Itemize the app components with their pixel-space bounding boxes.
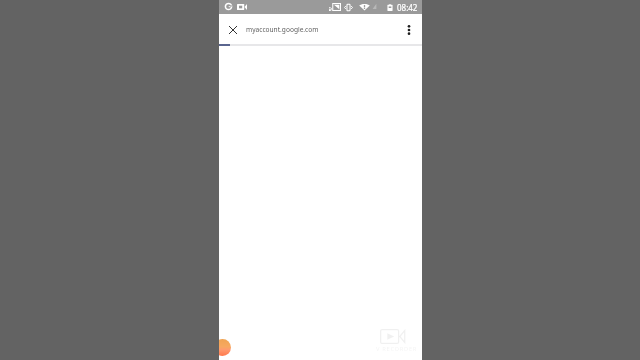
button[interactable]: More options — [397, 15, 421, 45]
button[interactable]: Close — [220, 15, 246, 45]
staticText: 08:42 — [397, 2, 418, 13]
button[interactable]: Record — [219, 339, 231, 356]
staticText: myaccount.google.com — [246, 25, 319, 34]
